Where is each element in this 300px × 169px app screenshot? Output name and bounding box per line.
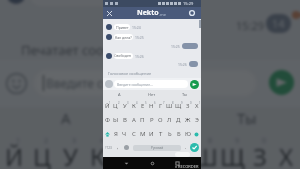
staticText: 1	[16, 136, 21, 146]
staticText: 6	[154, 136, 159, 146]
staticText: 2	[118, 101, 120, 105]
staticText: Д	[176, 116, 181, 124]
staticText: 15:24	[132, 25, 141, 30]
staticText: Й	[5, 140, 24, 169]
staticText: 4	[136, 101, 138, 105]
staticText: Л	[167, 116, 172, 124]
staticText: У	[123, 102, 127, 110]
staticText: Х	[279, 140, 294, 169]
staticText: 3	[127, 101, 129, 105]
staticText: С	[132, 130, 136, 138]
staticText: Т	[159, 130, 163, 138]
staticText: Введите сообщение	[46, 75, 164, 91]
staticText: 7	[163, 101, 165, 105]
staticText: М	[140, 130, 146, 138]
staticText: К	[90, 140, 105, 169]
staticText: А	[61, 108, 71, 128]
staticText: ?123	[105, 146, 112, 150]
staticText: Ц	[33, 140, 51, 169]
staticText: И	[149, 130, 154, 138]
staticText: Nekto	[137, 8, 159, 18]
button[interactable]: Settings	[185, 7, 198, 19]
staticText: 5	[145, 101, 147, 105]
staticText: 9	[181, 101, 183, 105]
staticText: Ш	[193, 140, 218, 169]
staticText: Ь	[168, 130, 172, 138]
staticText: Русский	[151, 146, 164, 150]
staticText: В	[123, 116, 127, 124]
staticText: 15:26	[135, 54, 144, 59]
staticText: Б	[177, 130, 181, 138]
staticText: 5	[127, 136, 132, 146]
staticText: Х	[195, 102, 199, 110]
staticText: Щ	[220, 140, 245, 169]
staticText: Как дела?	[115, 35, 132, 40]
staticText: Г	[159, 102, 163, 110]
staticText: Я	[114, 130, 118, 138]
staticText: 15:26	[178, 62, 187, 67]
staticText: Ж	[185, 116, 191, 124]
staticText: 15:29	[183, 1, 194, 6]
staticText: .	[185, 144, 187, 151]
staticText: Нет	[148, 92, 155, 97]
staticText: Г	[172, 140, 185, 169]
staticText: Ц	[113, 102, 118, 110]
staticText: Ш	[166, 102, 173, 110]
staticText: Ы	[113, 116, 119, 124]
staticText: Ф	[105, 116, 110, 124]
staticText: 6	[154, 101, 156, 105]
button[interactable]: Emoji	[105, 80, 113, 88]
staticText: v RECORDER	[175, 164, 199, 169]
staticText: .me	[159, 12, 167, 17]
staticText: 15:29	[236, 18, 265, 33]
staticText: Ч	[122, 130, 127, 138]
staticText: 14	[272, 16, 285, 31]
staticText: 8	[172, 101, 174, 105]
staticText: Е	[141, 102, 145, 110]
button[interactable]: Recents	[175, 161, 180, 166]
staticText: П	[140, 116, 145, 124]
staticText: 15:25	[171, 44, 180, 49]
staticText: Ты	[237, 108, 257, 128]
button[interactable]: Send	[190, 80, 199, 89]
button[interactable]: Back	[124, 161, 129, 166]
button[interactable]: Close	[103, 7, 116, 19]
staticText: Печатает сообщение	[21, 41, 154, 59]
staticText: Ю	[185, 130, 191, 138]
staticText: З	[253, 140, 267, 169]
button[interactable]: Home	[150, 161, 155, 166]
staticText: А	[118, 92, 121, 97]
staticText: Привет	[116, 25, 129, 30]
staticText: Свободен ли?	[114, 53, 133, 59]
staticText: Введите сообщение...	[117, 82, 153, 87]
staticText: Р	[150, 116, 154, 124]
staticText: З	[186, 102, 190, 110]
staticText: У	[63, 140, 78, 169]
staticText: Голосовое сообщение	[108, 71, 152, 76]
staticText: 1	[109, 101, 111, 105]
staticText: К	[132, 102, 136, 110]
staticText: 4	[100, 136, 105, 146]
staticText: Э	[195, 116, 199, 124]
staticText: 15:25	[135, 35, 144, 40]
staticText: 0	[190, 101, 192, 105]
staticText: А	[132, 116, 136, 124]
staticText: Щ	[175, 102, 182, 110]
staticText: Н	[143, 140, 161, 169]
staticText: 1	[199, 101, 201, 105]
staticText: Н	[149, 102, 154, 110]
staticText: ,	[117, 144, 119, 151]
staticText: Е	[118, 140, 132, 169]
staticText: О	[158, 116, 163, 124]
staticText: Й	[105, 102, 110, 110]
staticText: Ты	[182, 92, 188, 97]
